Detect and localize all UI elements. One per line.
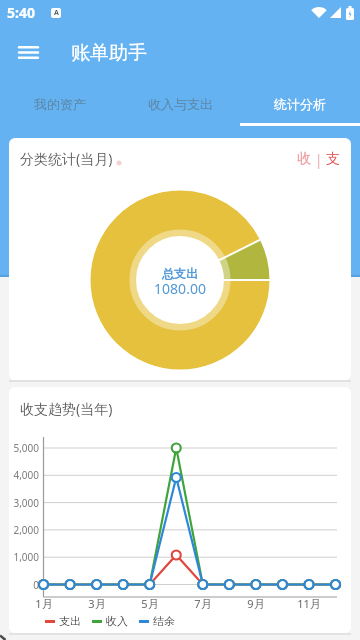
button[interactable]: 统计分析 <box>240 81 360 126</box>
staticText: 3,000 <box>9 496 39 510</box>
button[interactable] <box>0 25 56 81</box>
staticText: 5月 <box>134 596 166 611</box>
staticText: 5,000 <box>9 441 39 455</box>
staticText: 统计分析 <box>274 96 326 112</box>
staticText: 收支趋势(当年) <box>20 399 113 418</box>
staticText: 9月 <box>240 596 272 611</box>
staticText: 总支出 <box>120 266 240 281</box>
staticText: 1月 <box>28 596 60 611</box>
staticText: 结余 <box>153 614 175 628</box>
staticText: 1080.00 <box>120 279 240 298</box>
staticText: 我的资产 <box>34 96 86 112</box>
staticText: 11月 <box>293 596 325 611</box>
staticText: 收 <box>297 150 311 168</box>
staticText: 3月 <box>81 596 113 611</box>
staticText: 4,000 <box>9 468 39 482</box>
staticText: 支出 <box>59 614 81 628</box>
staticText: 0 <box>9 578 39 592</box>
button[interactable]: 收 <box>297 150 340 169</box>
staticText: 2,000 <box>9 523 39 537</box>
button[interactable]: 收入与支出 <box>120 81 240 126</box>
staticText: A <box>54 8 59 18</box>
staticText: 支 <box>326 150 340 168</box>
staticText: 1,000 <box>9 550 39 564</box>
staticText: 收入 <box>106 614 128 628</box>
button[interactable]: 我的资产 <box>0 81 120 126</box>
staticText: 收入与支出 <box>148 96 213 112</box>
staticText: 账单助手 <box>71 41 147 65</box>
staticText: 分类统计(当月) <box>20 149 113 168</box>
staticText: 5:40 <box>7 3 35 22</box>
staticText: | <box>311 150 326 169</box>
staticText: 7月 <box>187 596 219 611</box>
